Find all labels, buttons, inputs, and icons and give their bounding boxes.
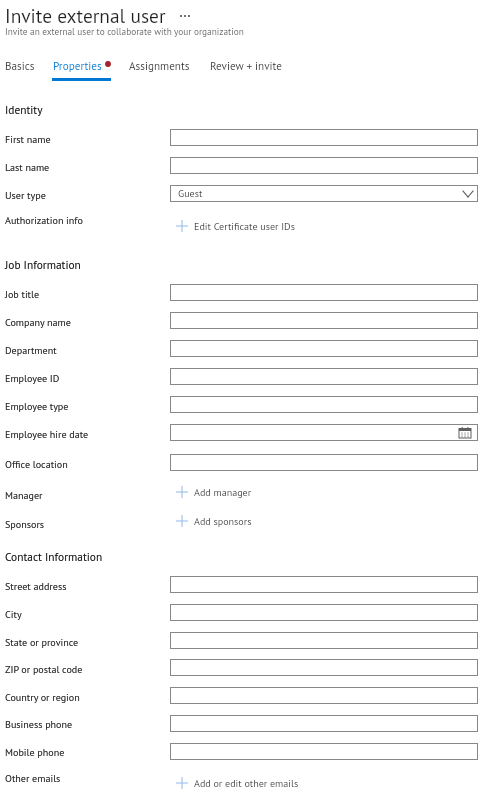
staticText: Country or region: [5, 691, 80, 704]
button[interactable]: Properties: [53, 55, 112, 83]
staticText: Guest: [178, 187, 203, 200]
staticText: Add or edit other emails: [194, 777, 299, 790]
button[interactable]: More options: [176, 8, 193, 24]
button[interactable]: [170, 396, 478, 413]
staticText: Job Information: [5, 257, 81, 272]
staticText: Identity: [5, 102, 43, 117]
staticText: Mobile phone: [5, 746, 65, 759]
staticText: First name: [5, 133, 51, 146]
button[interactable]: Add or edit other emails: [176, 776, 299, 790]
staticText: Other emails: [5, 772, 61, 785]
staticText: Sponsors: [5, 518, 45, 531]
staticText: Edit Certificate user IDs: [194, 220, 295, 233]
staticText: User type: [5, 189, 46, 202]
staticText: Employee ID: [5, 372, 60, 385]
staticText: ZIP or postal code: [5, 663, 83, 676]
button[interactable]: [170, 129, 478, 146]
staticText: Department: [5, 344, 57, 357]
staticText: Review + invite: [210, 59, 282, 73]
staticText: Properties: [53, 59, 102, 73]
staticText: Job title: [5, 288, 40, 301]
staticText: Company name: [5, 316, 71, 329]
staticText: Last name: [5, 161, 50, 174]
button[interactable]: Basics: [5, 55, 35, 83]
staticText: Contact Information: [5, 549, 103, 564]
staticText: Last name: [5, 161, 50, 174]
button[interactable]: Assignments: [129, 55, 190, 83]
button[interactable]: [170, 368, 478, 385]
staticText: Invite external user: [5, 3, 166, 28]
staticText: Street address: [5, 580, 67, 593]
button[interactable]: Edit Certificate user IDs: [176, 219, 295, 233]
button[interactable]: [170, 687, 478, 704]
staticText: State or province: [5, 636, 79, 649]
staticText: User type: [5, 189, 46, 202]
staticText: Employee ID: [5, 372, 60, 385]
staticText: Assignments: [129, 59, 190, 73]
staticText: Identity: [5, 102, 43, 117]
staticText: Employee type: [5, 400, 69, 413]
staticText: Sponsors: [5, 518, 45, 531]
staticText: Add manager: [194, 486, 252, 499]
staticText: Manager: [5, 489, 43, 502]
button[interactable]: [170, 659, 478, 676]
button[interactable]: Guest: [170, 185, 478, 202]
staticText: Other emails: [5, 772, 61, 785]
staticText: Business phone: [5, 718, 73, 731]
button[interactable]: [170, 604, 478, 621]
staticText: Contact Information: [5, 549, 103, 564]
staticText: Office location: [5, 458, 68, 471]
staticText: Country or region: [5, 691, 80, 704]
button[interactable]: [170, 340, 478, 357]
staticText: Employee hire date: [5, 428, 89, 441]
staticText: Job title: [5, 288, 40, 301]
button[interactable]: Pick a date: [170, 424, 478, 441]
staticText: State or province: [5, 636, 79, 649]
staticText: Business phone: [5, 718, 73, 731]
staticText: Basics: [5, 59, 35, 73]
staticText: Authorization info: [5, 214, 83, 227]
staticText: Mobile phone: [5, 746, 65, 759]
button[interactable]: [170, 715, 478, 732]
staticText: Invite an external user to collaborate w…: [5, 26, 244, 38]
other: Open dropdown: [463, 191, 473, 197]
button[interactable]: [170, 312, 478, 329]
button[interactable]: Review + invite: [210, 55, 282, 83]
staticText: Job Information: [5, 257, 81, 272]
button[interactable]: Add sponsors: [176, 514, 252, 528]
button[interactable]: [170, 284, 478, 301]
staticText: City: [5, 608, 22, 621]
staticText: Employee hire date: [5, 428, 89, 441]
staticText: Employee type: [5, 400, 69, 413]
button[interactable]: [170, 743, 478, 760]
staticText: Company name: [5, 316, 71, 329]
staticText: Manager: [5, 489, 43, 502]
button[interactable]: [170, 576, 478, 593]
button[interactable]: [170, 632, 478, 649]
staticText: City: [5, 608, 22, 621]
staticText: Office location: [5, 458, 68, 471]
staticText: Add sponsors: [194, 515, 252, 528]
button[interactable]: [170, 157, 478, 174]
staticText: Street address: [5, 580, 67, 593]
staticText: First name: [5, 133, 51, 146]
button[interactable]: Add manager: [176, 485, 252, 499]
staticText: Authorization info: [5, 214, 83, 227]
staticText: Department: [5, 344, 57, 357]
staticText: ZIP or postal code: [5, 663, 83, 676]
other: Pick a date: [459, 427, 471, 438]
button[interactable]: [170, 454, 478, 471]
